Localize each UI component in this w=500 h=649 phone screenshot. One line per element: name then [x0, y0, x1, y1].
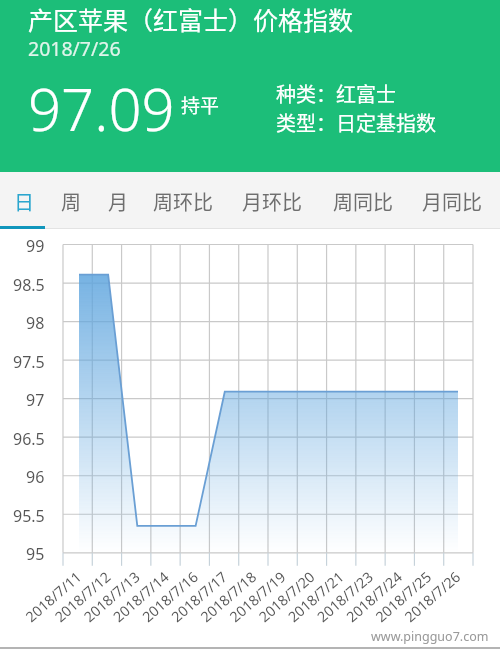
- button[interactable]: 月环比: [225, 172, 319, 229]
- button[interactable]: 月: [94, 172, 142, 229]
- staticText: 产区苹果（红富士）价格指数: [28, 1, 354, 37]
- staticText: www.pingguo7.com: [371, 628, 489, 645]
- button[interactable]: 周: [48, 172, 94, 229]
- staticText: 2018/7/26: [28, 35, 121, 62]
- staticText: 持平: [181, 91, 220, 119]
- staticText: 日: [14, 187, 34, 216]
- button[interactable]: 周环比: [141, 172, 225, 229]
- staticText: 月环比: [242, 187, 302, 216]
- staticText: 周环比: [153, 187, 213, 216]
- staticText: 种类：红富士: [276, 79, 396, 108]
- staticText: 周: [61, 187, 81, 216]
- button[interactable]: 月同比: [405, 172, 499, 229]
- button[interactable]: 周同比: [319, 172, 407, 229]
- staticText: 周同比: [333, 187, 393, 216]
- staticText: 月: [108, 187, 128, 216]
- staticText: 月同比: [422, 187, 482, 216]
- button[interactable]: 日: [1, 172, 47, 229]
- staticText: 97.09: [28, 69, 175, 148]
- staticText: 类型：日定基指数: [276, 108, 436, 137]
